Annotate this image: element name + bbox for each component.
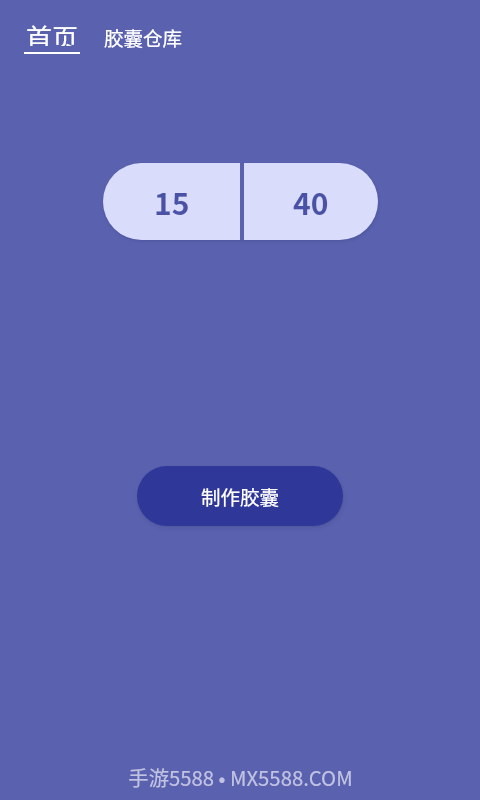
- button[interactable]: 当前胶囊数量 15: [103, 163, 240, 240]
- button[interactable]: 首页: [14, 10, 90, 62]
- button[interactable]: 胶囊容量 40: [244, 163, 378, 240]
- staticText: 15: [154, 180, 190, 223]
- staticText: 制作胶囊: [201, 482, 280, 510]
- staticText: 40: [293, 180, 329, 223]
- staticText: 胶囊仓库: [104, 23, 183, 51]
- button[interactable]: 胶囊仓库: [94, 13, 193, 61]
- button[interactable]: 制作胶囊: [137, 466, 343, 526]
- staticText: 首页: [26, 18, 79, 46]
- staticText: 手游5588 • MX5588.COM: [128, 762, 353, 791]
